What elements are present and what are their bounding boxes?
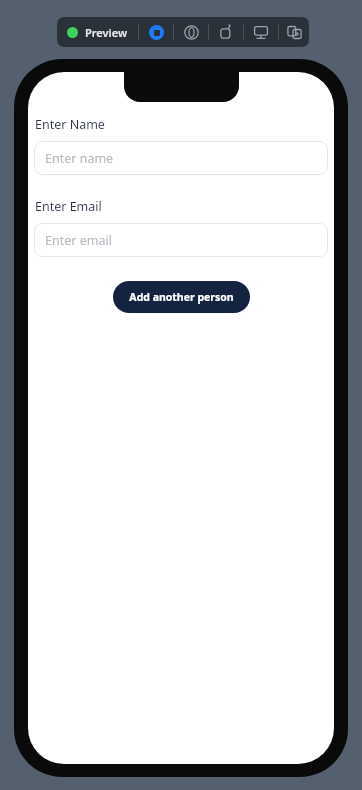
- button[interactable]: Animation preview: [174, 17, 208, 47]
- button[interactable]: Enter name: [34, 141, 328, 175]
- button[interactable]: Run on device: [209, 17, 243, 47]
- staticText: Enter name: [45, 150, 114, 167]
- staticText: Enter Name: [35, 116, 105, 133]
- staticText: Enter email: [45, 232, 112, 249]
- button[interactable]: Add another person: [113, 281, 250, 313]
- staticText: Preview: [85, 25, 128, 40]
- staticText: Enter Email: [35, 198, 102, 215]
- button[interactable]: Copy preview: [279, 17, 309, 47]
- button[interactable]: Preview: [57, 17, 138, 47]
- button[interactable]: Desktop preview: [244, 17, 278, 47]
- staticText: Add another person: [129, 290, 234, 304]
- button[interactable]: Enter email: [34, 223, 328, 257]
- button[interactable]: Interactive preview: [139, 17, 173, 47]
